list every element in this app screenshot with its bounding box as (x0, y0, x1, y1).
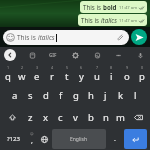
staticText: c (58, 111, 63, 124)
button[interactable]: Back (4, 49, 16, 61)
staticText: 8 (110, 65, 113, 70)
button[interactable]: Comma (25, 129, 38, 149)
button[interactable]: k (113, 84, 128, 106)
staticText: f (59, 89, 63, 102)
staticText: m (116, 111, 125, 124)
button[interactable]: Send (131, 29, 147, 45)
staticText: i (110, 70, 113, 83)
other: Attach (117, 34, 125, 42)
button[interactable]: Voice input (134, 49, 146, 61)
button[interactable]: 1 (1, 63, 15, 84)
staticText: x (43, 111, 49, 124)
other: Emoji (6, 33, 15, 42)
button[interactable]: English (52, 129, 106, 149)
button[interactable]: c (53, 106, 68, 128)
staticText: d (43, 89, 49, 102)
button[interactable]: Clipboard (26, 49, 38, 61)
button[interactable]: This is (80, 1, 147, 13)
staticText: t (65, 70, 69, 83)
button[interactable]: Enter (124, 129, 147, 149)
button[interactable]: More options (112, 49, 124, 61)
button[interactable]: x (38, 106, 53, 128)
staticText: This is (83, 3, 103, 11)
button[interactable]: Shift (1, 106, 23, 128)
staticText: 9 (126, 65, 129, 70)
button[interactable]: 7 (89, 63, 104, 84)
button[interactable]: Settings (69, 49, 81, 61)
staticText: r (50, 70, 54, 83)
staticText: 4 (51, 65, 54, 70)
staticText: z (28, 111, 33, 124)
staticText: b (88, 111, 94, 124)
staticText: 3 (36, 65, 39, 70)
button[interactable]: l (128, 84, 143, 106)
staticText: e (34, 70, 40, 83)
staticText: 11:47 am (119, 18, 138, 24)
staticText: 2 (21, 65, 24, 70)
staticText: English (70, 136, 88, 143)
staticText: 6 (80, 65, 83, 70)
button[interactable]: b (83, 106, 98, 128)
staticText: p (139, 70, 145, 83)
button[interactable]: 9 (119, 63, 134, 84)
staticText: ?123 (7, 135, 20, 143)
staticText: This is (17, 33, 38, 42)
button[interactable]: h (83, 84, 98, 106)
button[interactable]: s (23, 84, 38, 106)
staticText: , (31, 136, 33, 146)
staticText: ☺ (30, 132, 34, 136)
staticText: k (118, 89, 124, 102)
button[interactable]: j (98, 84, 113, 106)
staticText: g (73, 89, 79, 102)
button[interactable]: 4 (44, 63, 59, 84)
button[interactable]: Emoji (3, 30, 129, 45)
button[interactable]: n (98, 106, 113, 128)
staticText: q (5, 70, 11, 83)
staticText: . (114, 134, 116, 144)
button[interactable]: 5 (59, 63, 74, 84)
staticText: w (18, 70, 26, 83)
button[interactable]: 2 (15, 63, 29, 84)
button[interactable]: 6 (74, 63, 89, 84)
button[interactable]: a (7, 84, 23, 106)
button[interactable]: g (68, 84, 83, 106)
button[interactable]: GIF (47, 49, 59, 61)
staticText: h (88, 89, 94, 102)
button[interactable]: Change language (38, 129, 51, 149)
staticText: bold (103, 3, 117, 11)
staticText: 11:47 am (119, 5, 138, 11)
staticText: o (124, 70, 130, 83)
staticText: y (79, 70, 84, 83)
staticText: a (12, 89, 18, 102)
button[interactable]: ?123 (2, 129, 25, 149)
button[interactable]: Period (107, 129, 123, 149)
staticText: v (73, 111, 78, 124)
staticText: GIF (49, 52, 57, 58)
staticText: 7 (96, 65, 99, 70)
staticText: s (28, 89, 33, 102)
staticText: u (94, 70, 100, 83)
staticText: italics (101, 16, 117, 24)
button[interactable]: Stickers (91, 49, 103, 61)
button[interactable]: 3 (29, 63, 44, 84)
staticText: n (103, 111, 109, 124)
staticText: This is (81, 16, 101, 24)
staticText: 0 (141, 65, 144, 70)
button[interactable]: v (68, 106, 83, 128)
button[interactable]: 0 (134, 63, 149, 84)
button[interactable]: 8 (104, 63, 119, 84)
staticText: italics (38, 33, 55, 42)
staticText: 5 (66, 65, 69, 70)
button[interactable]: f (53, 84, 68, 106)
staticText: j (104, 89, 107, 102)
button[interactable]: z (23, 106, 38, 128)
button[interactable]: Backspace (128, 106, 149, 128)
staticText: 1 (7, 65, 10, 70)
button[interactable]: This is (78, 14, 147, 26)
button[interactable]: m (113, 106, 128, 128)
staticText: l (134, 89, 137, 102)
button[interactable]: d (38, 84, 53, 106)
